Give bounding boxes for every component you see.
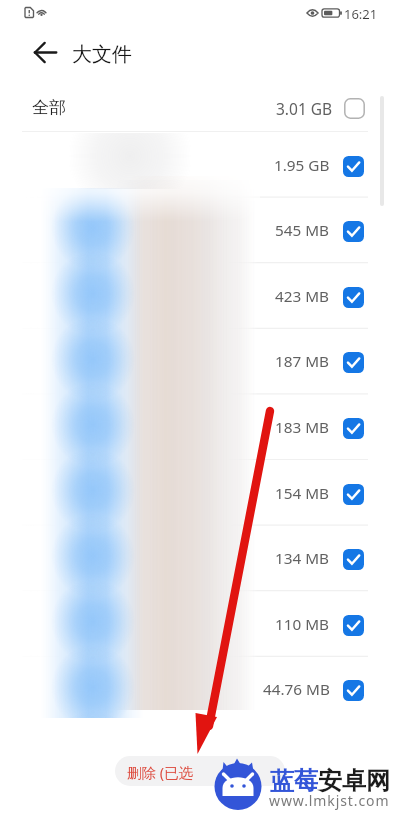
button[interactable]: 134 MB	[0, 525, 400, 591]
button[interactable]: Selected	[343, 287, 364, 308]
button[interactable]: 删除 (已选	[115, 756, 285, 786]
button[interactable]: Selected	[343, 418, 364, 439]
button[interactable]: 183 MB	[0, 394, 400, 460]
button[interactable]: Select all	[344, 98, 365, 119]
staticText: 423 MB	[275, 286, 330, 307]
button[interactable]: 423 MB	[0, 263, 400, 329]
button[interactable]: Selected	[343, 549, 364, 570]
button[interactable]: Selected	[343, 615, 364, 636]
staticText: 3.01 GB	[276, 98, 333, 119]
staticText: 全部	[32, 97, 66, 118]
button[interactable]: 110 MB	[0, 591, 400, 657]
staticText: 删除 (已选	[127, 762, 194, 782]
button[interactable]: 187 MB	[0, 328, 400, 394]
staticText: 545 MB	[275, 220, 330, 241]
button[interactable]: Selected	[343, 680, 364, 701]
button[interactable]: 545 MB	[0, 197, 400, 263]
button[interactable]: Selected	[343, 352, 364, 373]
button[interactable]: Selected	[343, 156, 364, 177]
button[interactable]: Back	[26, 33, 64, 71]
button[interactable]: 154 MB	[0, 460, 400, 526]
staticText: 蓝莓	[270, 766, 318, 796]
button[interactable]: 全部	[0, 84, 400, 131]
button[interactable]: 1.95 GB	[0, 132, 400, 198]
staticText: 154 MB	[275, 483, 330, 504]
staticText: 16:21	[344, 5, 378, 23]
staticText: 183 MB	[275, 417, 330, 438]
button[interactable]: Selected	[343, 484, 364, 505]
staticText: 187 MB	[275, 351, 330, 372]
staticText: 134 MB	[275, 548, 330, 569]
staticText: 1.95 GB	[274, 155, 330, 176]
staticText: 安卓网	[318, 766, 390, 796]
button[interactable]: 44.76 MB	[0, 656, 400, 722]
staticText: 110 MB	[275, 614, 330, 635]
staticText: 大文件	[72, 42, 132, 67]
button[interactable]: Selected	[343, 221, 364, 242]
staticText: www.lmkjst.com	[269, 791, 390, 810]
staticText: 44.76 MB	[263, 679, 330, 700]
